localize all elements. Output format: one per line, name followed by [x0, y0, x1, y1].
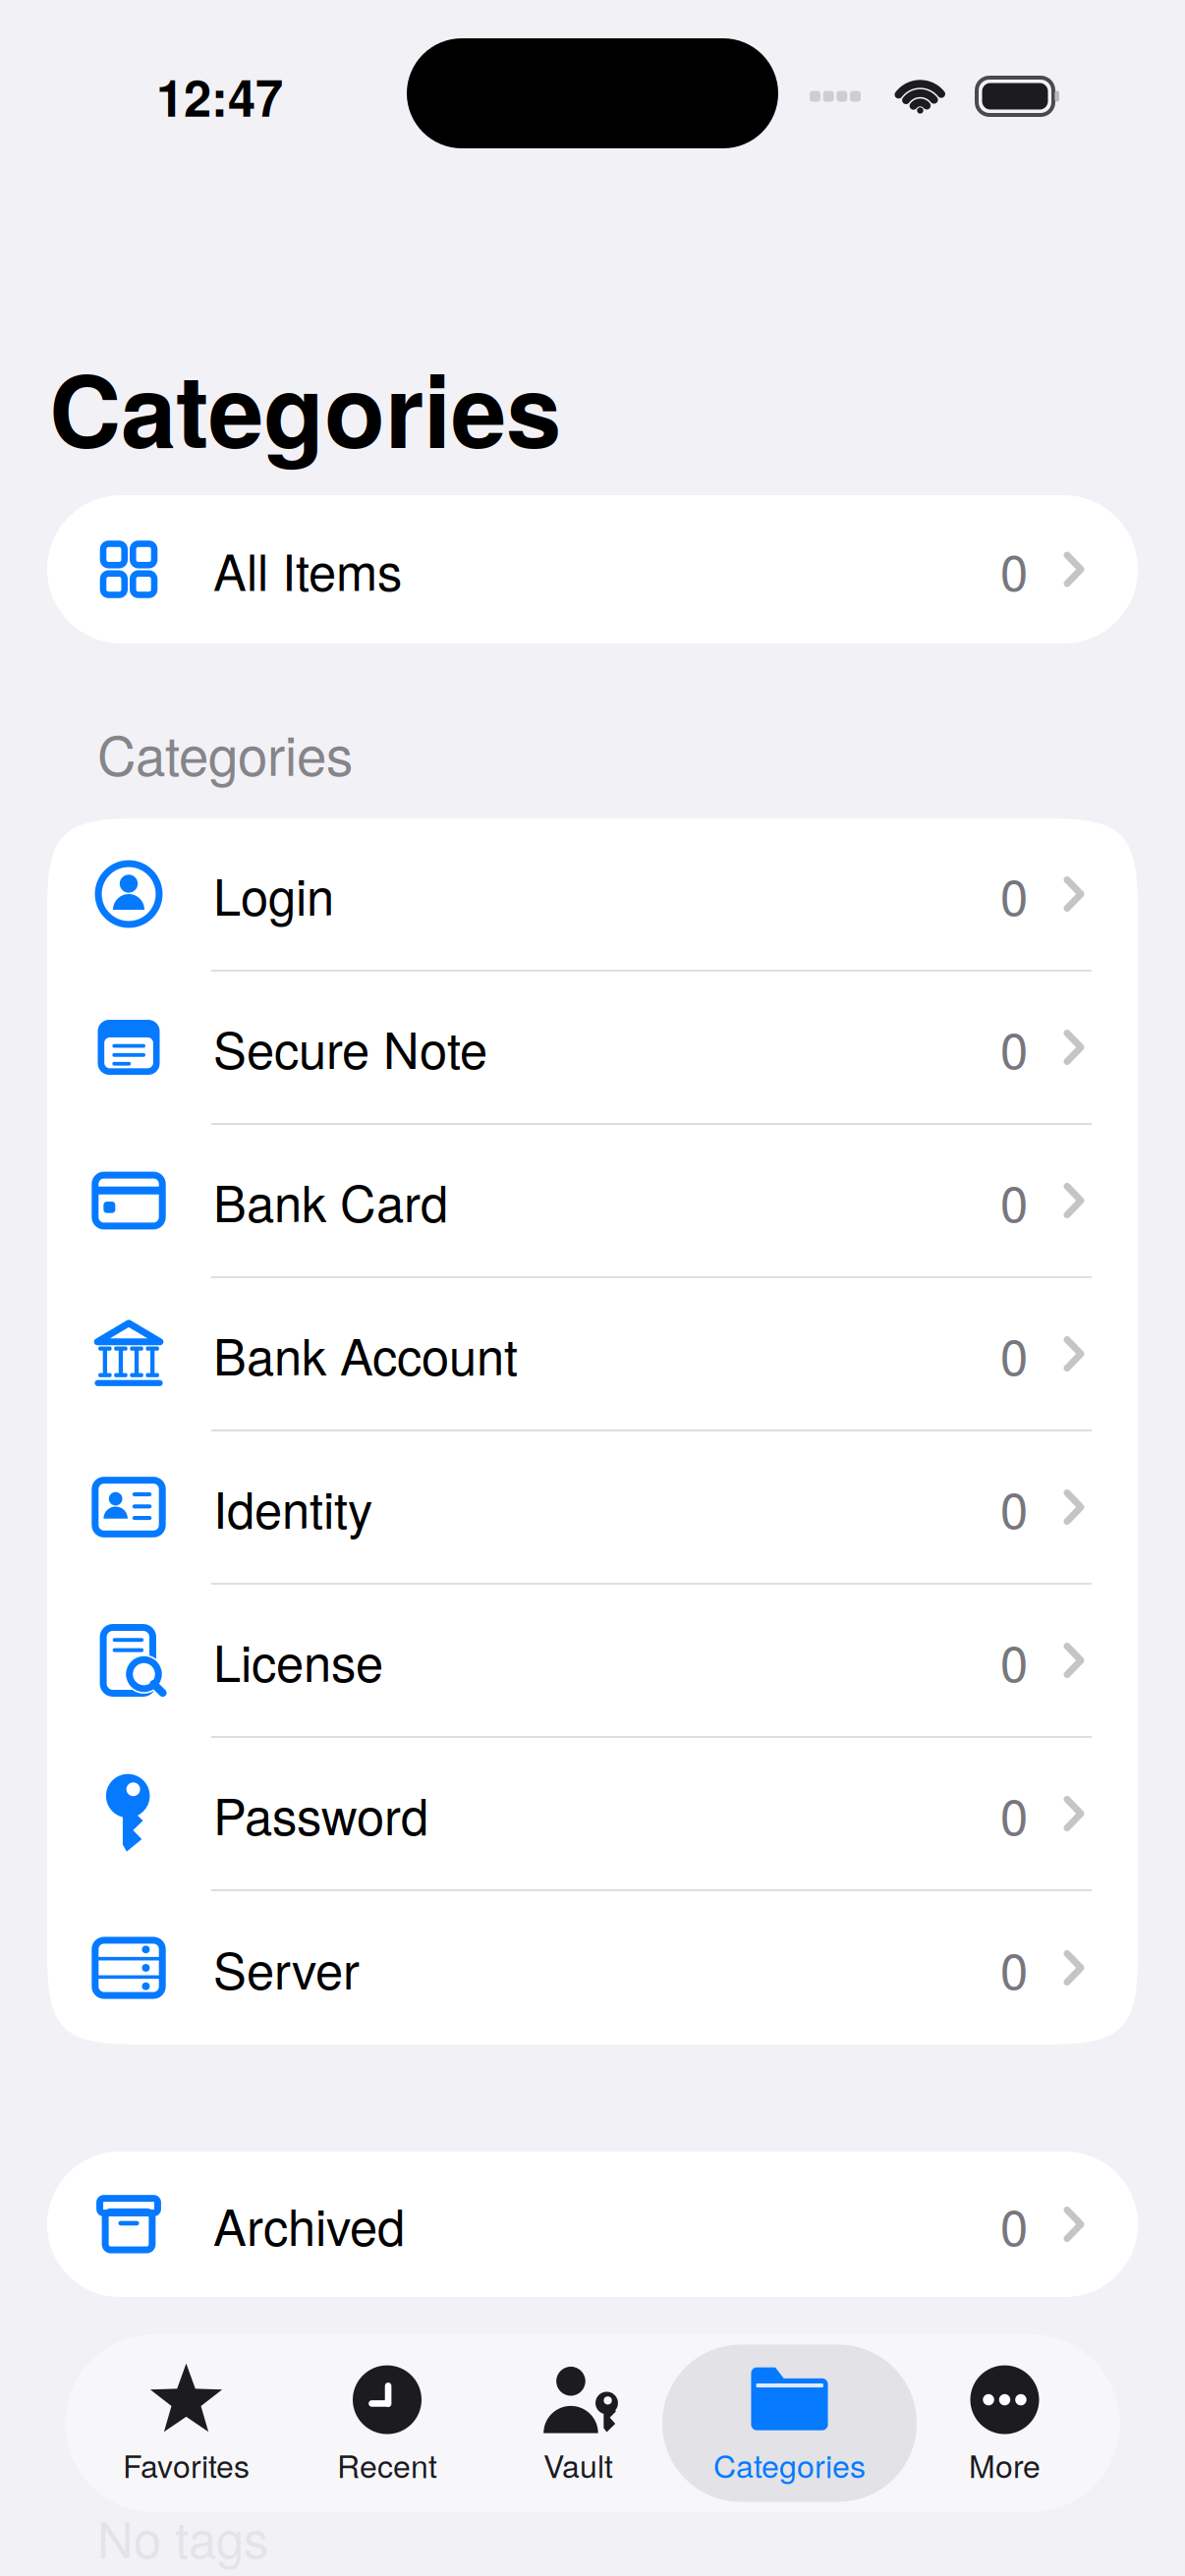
staticText: 0 [1000, 1318, 1028, 1389]
staticText: 0 [1000, 1165, 1028, 1236]
staticText: 0 [1000, 1012, 1028, 1083]
staticText: Categories [97, 714, 353, 791]
staticText: Vault [543, 2442, 613, 2487]
button[interactable]: Bank Card [47, 1125, 1138, 1278]
button[interactable]: All Items [47, 495, 1138, 644]
staticText: 0 [1000, 858, 1028, 930]
button[interactable]: Bank Account [47, 1278, 1138, 1431]
staticText: 0 [1000, 2189, 1028, 2260]
staticText: No tags [97, 2501, 268, 2572]
staticText: Server [213, 1932, 360, 2004]
staticText: 0 [1000, 1625, 1028, 1696]
button[interactable]: Server [47, 1891, 1138, 2044]
button[interactable]: Login [47, 818, 1138, 972]
staticText: Identity [213, 1471, 372, 1543]
staticText: Password [213, 1778, 428, 1849]
staticText: Categories [713, 2442, 866, 2487]
staticText: 0 [1000, 1778, 1028, 1849]
staticText: Recent [337, 2442, 437, 2487]
staticText: Login [213, 858, 334, 930]
button[interactable]: Secure Note [47, 972, 1138, 1125]
button[interactable]: Categories [689, 2334, 890, 2512]
staticText: License [213, 1625, 383, 1696]
staticText: Categories [49, 336, 561, 479]
button[interactable]: Password [47, 1738, 1138, 1891]
button[interactable]: More [890, 2334, 1120, 2512]
button[interactable]: License [47, 1585, 1138, 1738]
staticText: More [969, 2442, 1041, 2487]
staticText: Favorites [123, 2442, 250, 2487]
button[interactable]: Recent [307, 2334, 467, 2512]
staticText: 12:47 [156, 61, 283, 132]
staticText: All Items [213, 534, 402, 605]
button[interactable]: Archived [47, 2152, 1138, 2297]
staticText: 0 [1000, 534, 1028, 605]
staticText: Tags [97, 2404, 210, 2481]
staticText: Archived [213, 2189, 405, 2260]
staticText: Bank Account [213, 1318, 518, 1389]
button[interactable]: Favorites [65, 2334, 307, 2512]
staticText: Secure Note [213, 1012, 487, 1083]
button[interactable]: Vault [467, 2334, 689, 2512]
staticText: Bank Card [213, 1165, 448, 1236]
staticText: 0 [1000, 1932, 1028, 2004]
button[interactable]: Identity [47, 1431, 1138, 1585]
staticText: 0 [1000, 1471, 1028, 1543]
